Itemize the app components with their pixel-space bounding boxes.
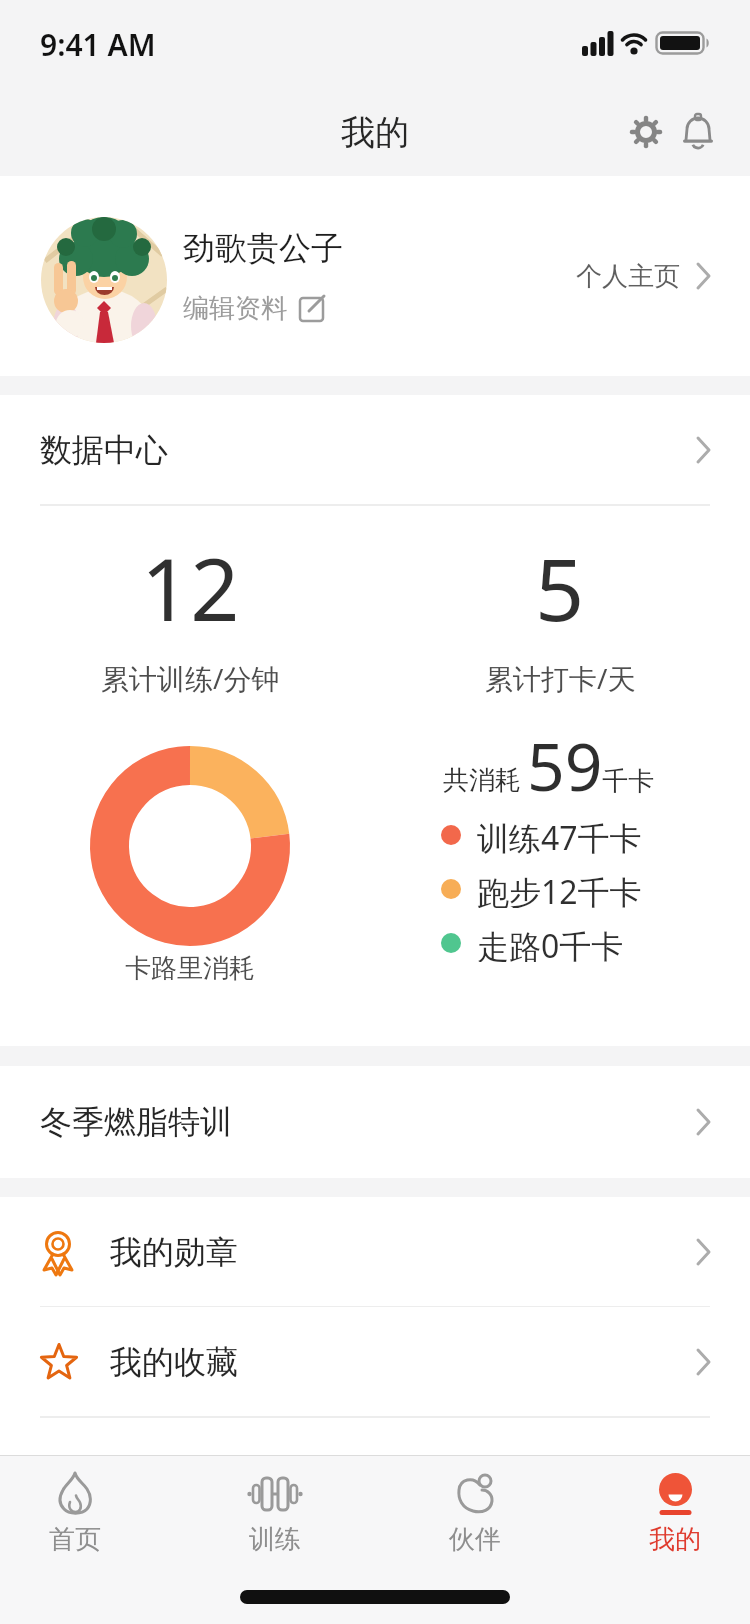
staticText: 走路0千卡 [477, 924, 624, 962]
staticText: 编辑资料 [183, 292, 287, 325]
staticText: 数据中心 [40, 430, 168, 470]
staticText: 首页 [49, 1523, 101, 1556]
button[interactable]: 劲歌贵公子 [0, 176, 750, 376]
staticText: 劲歌贵公子 [183, 228, 343, 268]
button[interactable]: 我的勋章 [0, 1197, 750, 1307]
button[interactable]: 冬季燃脂特训 [0, 1066, 750, 1178]
staticText: 我的 [649, 1523, 701, 1556]
staticText: 我的勋章 [110, 1232, 238, 1272]
staticText: 训练 [249, 1523, 301, 1556]
button[interactable]: 我的收藏 [0, 1307, 750, 1417]
button[interactable]: 编辑资料 [183, 288, 327, 328]
staticText: 我的收藏 [110, 1342, 238, 1382]
staticText: 跑步12千卡 [477, 870, 642, 908]
staticText: 卡路里消耗 [125, 952, 255, 985]
button[interactable] [678, 110, 718, 154]
staticText: 9:41 AM [40, 24, 156, 65]
button[interactable] [626, 112, 666, 152]
button[interactable]: 伙伴 [400, 1455, 550, 1565]
staticText: 5 [535, 529, 585, 645]
staticText: 我的 [341, 111, 409, 154]
staticText: 伙伴 [449, 1523, 501, 1556]
staticText: 累计打卡/天 [485, 659, 636, 697]
button[interactable]: 数据中心 [0, 395, 750, 505]
staticText: 共消耗 [443, 764, 521, 797]
staticText: 12 [141, 529, 240, 645]
button[interactable]: 首页 [0, 1455, 150, 1565]
staticText: 59 [527, 720, 603, 800]
staticText: 累计训练/分钟 [101, 659, 280, 697]
button[interactable]: 我的 [600, 1455, 750, 1565]
staticText: 千卡 [602, 765, 654, 798]
staticText: 个人主页 [576, 260, 680, 293]
staticText: 冬季燃脂特训 [40, 1102, 232, 1142]
button[interactable]: 个人主页 [576, 252, 712, 300]
staticText: 训练47千卡 [477, 816, 642, 854]
button[interactable]: 训练 [200, 1455, 350, 1565]
